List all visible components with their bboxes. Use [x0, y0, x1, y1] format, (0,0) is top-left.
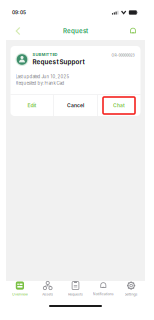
staticText: 09:05: [12, 10, 26, 15]
staticText: Last updated Jun 10, 2025: [15, 74, 69, 79]
button[interactable]: Cancel: [54, 95, 97, 116]
staticText: Request Support: [32, 58, 84, 66]
button[interactable]: Settings: [117, 281, 145, 302]
staticText: SUBMITTED: [32, 52, 57, 57]
button[interactable]: Chat: [97, 95, 140, 116]
button[interactable]: Edit: [10, 95, 53, 116]
staticText: Assets: [42, 292, 53, 296]
button[interactable]: Assets: [34, 281, 62, 302]
staticText: Settings: [125, 292, 138, 296]
staticText: OR-00000023: [111, 53, 134, 57]
staticText: Chat: [113, 102, 125, 108]
staticText: Overview: [12, 292, 28, 296]
staticText: Requested by: Frank Cad: [15, 81, 64, 86]
button[interactable]: Back: [9, 22, 27, 40]
staticText: Request: [63, 27, 88, 35]
staticText: Edit: [27, 102, 36, 108]
staticText: Cancel: [67, 102, 84, 108]
button[interactable]: Overview: [6, 281, 34, 302]
button[interactable]: Requests: [62, 281, 89, 302]
staticText: Requests: [68, 292, 83, 296]
button[interactable]: Notifications: [124, 22, 142, 40]
button[interactable]: Notifications: [89, 281, 117, 302]
staticText: Notifications: [93, 292, 114, 296]
